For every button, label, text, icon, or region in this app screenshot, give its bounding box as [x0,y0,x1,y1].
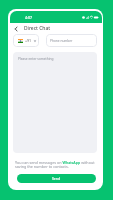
staticText: Please enter something [18,57,54,61]
button[interactable]: Please enter something [13,52,97,153]
staticText: You can send messages on WhatsApp withou… [15,160,97,170]
button[interactable]: Phone number [46,34,97,47]
staticText: Phone number [50,39,73,43]
staticText: +91 [25,38,32,43]
button[interactable]: Back [10,23,21,34]
button[interactable]: Send [17,174,96,183]
staticText: 4:07 [25,15,33,20]
staticText: Send [52,176,61,181]
staticText: Direct Chat [24,25,51,32]
button[interactable]: +91 [13,34,39,47]
